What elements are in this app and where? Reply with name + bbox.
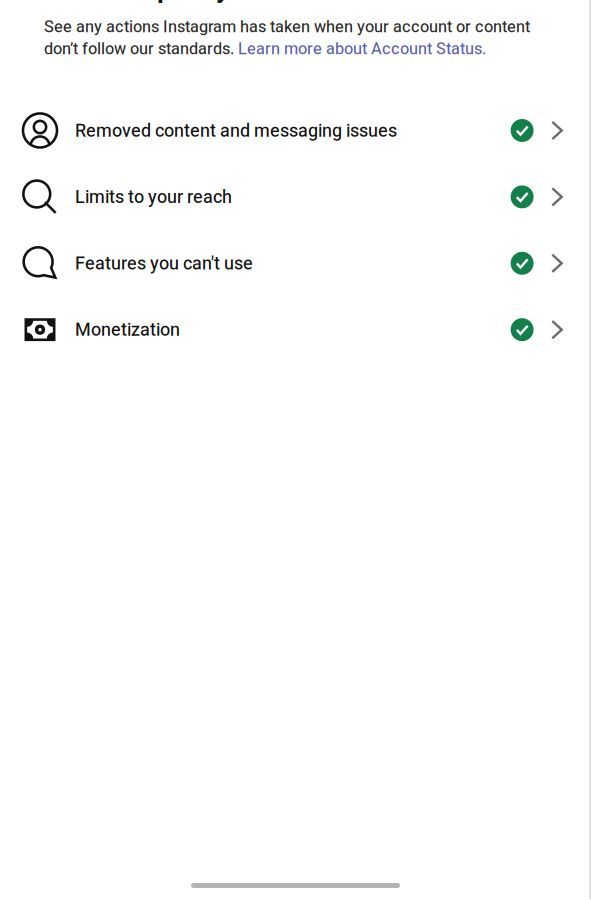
staticText: Learn more about Account Status. [238, 39, 486, 58]
staticText: don’t follow our standards. [44, 39, 238, 58]
staticText: Limits to your reach [75, 186, 232, 207]
staticText: See any actions Instagram has taken when… [44, 17, 530, 36]
button[interactable]: Removed content and messaging issues [0, 97, 591, 164]
staticText: Account quality [44, 0, 229, 4]
button[interactable]: Learn more about Account Status. [238, 39, 486, 58]
button[interactable]: Limits to your reach [0, 164, 591, 230]
staticText: Monetization [75, 319, 180, 340]
button[interactable]: Features you can't use [0, 230, 591, 296]
staticText: Removed content and messaging issues [75, 120, 397, 141]
staticText: Features you can't use [75, 253, 253, 274]
button[interactable]: Monetization [0, 296, 591, 363]
